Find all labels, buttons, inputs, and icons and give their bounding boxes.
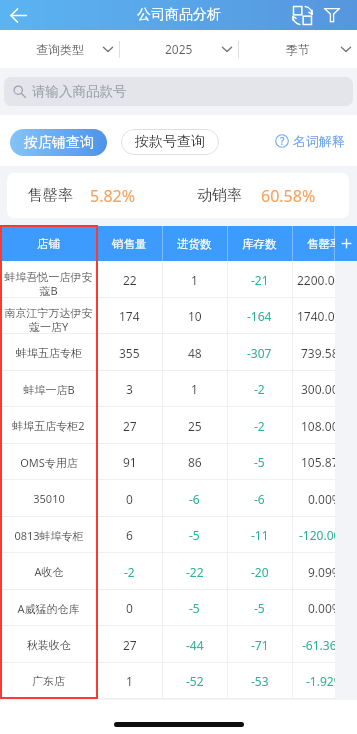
button[interactable]: 按款号查询 [121, 129, 219, 155]
staticText: 1 [191, 381, 198, 397]
staticText: 25 [188, 418, 202, 434]
button[interactable]: A威猛的仓库 [0, 590, 357, 626]
staticText: -5 [254, 600, 265, 616]
staticText: 86 [188, 454, 202, 470]
button[interactable]: 35010 [0, 480, 357, 517]
staticText: 3 [126, 381, 133, 397]
staticText: 蚌埠吾悦一店伊安蔻B [1, 270, 96, 298]
button[interactable]: 库存数 [227, 226, 292, 261]
staticText: OMS专用店 [20, 455, 78, 470]
staticText: 0 [126, 600, 133, 616]
staticText: -2 [124, 564, 135, 580]
button[interactable]: 进货数 [162, 226, 227, 261]
button[interactable]: 销售量 [97, 226, 162, 261]
staticText: -5 [254, 454, 265, 470]
staticText: 9.09% [308, 564, 342, 580]
staticText: 进货数 [177, 237, 212, 251]
staticText: 48 [188, 345, 202, 361]
staticText: 季节 [286, 42, 310, 57]
button[interactable]: A收仓 [0, 553, 357, 590]
button[interactable]: 蚌埠一店B [0, 371, 357, 407]
staticText: 请输入商品款号 [32, 83, 127, 100]
staticText: 蚌埠五店专柜 [16, 346, 82, 360]
staticText: 秋装收仓 [27, 638, 71, 652]
button[interactable]: ? [275, 133, 345, 149]
staticText: 5.82% [90, 185, 136, 207]
button[interactable]: 秋装收仓 [0, 626, 357, 663]
button[interactable]: OMS专用店 [0, 444, 357, 480]
button[interactable]: 蚌埠五店专柜 [0, 334, 357, 371]
staticText: 1740.00% [297, 308, 352, 324]
button[interactable]: 南京江宁万达伊安蔻一店Y [0, 298, 357, 334]
button[interactable]: 按店铺查询 [10, 129, 107, 156]
staticText: -61.36% [302, 637, 347, 653]
button[interactable]: 查询类型 [0, 30, 119, 68]
staticText: -1.92% [306, 673, 344, 689]
staticText: 售罄率 [307, 237, 342, 251]
staticText: 0813蚌埠专柜 [14, 528, 84, 543]
staticText: 公司商品分析 [137, 6, 221, 24]
staticText: 名词解释 [293, 133, 345, 149]
staticText: -71 [251, 637, 269, 653]
staticText: 店铺 [37, 237, 60, 251]
staticText: -120.00% [299, 527, 351, 543]
staticText: -2 [254, 418, 265, 434]
staticText: -2 [254, 381, 265, 397]
staticText: 0.00% [308, 491, 342, 507]
button[interactable]: 请输入商品款号 [4, 77, 353, 106]
staticText: 739.58% [301, 345, 349, 361]
button[interactable]: Back [0, 0, 36, 30]
staticText: 300.00% [301, 381, 349, 397]
button[interactable]: Add column [335, 226, 357, 261]
staticText: A威猛的仓库 [17, 601, 80, 616]
button[interactable]: 店铺 [0, 226, 97, 261]
staticText: ? [280, 134, 285, 148]
button[interactable]: 2025 [120, 30, 238, 68]
staticText: -5 [189, 600, 200, 616]
button[interactable]: 售罄率 [292, 226, 357, 261]
staticText: A收仓 [34, 564, 64, 579]
staticText: 蚌埠一店B [23, 382, 75, 397]
staticText: -164 [247, 308, 272, 324]
button[interactable]: 季节 [239, 30, 357, 68]
staticText: 0.00% [308, 600, 342, 616]
staticText: 27 [123, 637, 137, 653]
staticText: 6 [126, 527, 133, 543]
staticText: 1 [126, 673, 133, 689]
staticText: 355 [119, 345, 140, 361]
staticText: 22 [123, 272, 137, 288]
staticText: -53 [251, 673, 269, 689]
staticText: 10 [188, 308, 202, 324]
staticText: -21 [251, 272, 269, 288]
staticText: 91 [123, 454, 137, 470]
staticText: -20 [251, 564, 269, 580]
button[interactable]: Compare [286, 0, 318, 30]
staticText: 蚌埠五店专柜2 [12, 418, 85, 433]
staticText: 2200.00% [297, 272, 352, 288]
button[interactable]: 蚌埠吾悦一店伊安蔻B [0, 261, 357, 298]
staticText: 0 [126, 491, 133, 507]
staticText: 35010 [33, 491, 65, 506]
staticText: -52 [186, 673, 204, 689]
staticText: -6 [254, 491, 265, 507]
button[interactable]: 0813蚌埠专柜 [0, 517, 357, 553]
staticText: 174 [119, 308, 140, 324]
staticText: 查询类型 [36, 42, 84, 57]
button[interactable]: 蚌埠五店专柜2 [0, 407, 357, 444]
staticText: 库存数 [242, 237, 277, 251]
staticText: 广东店 [32, 674, 65, 688]
button[interactable]: Filter [318, 0, 346, 30]
staticText: -44 [186, 637, 204, 653]
staticText: -6 [189, 491, 200, 507]
staticText: 售罄率 [28, 186, 73, 205]
staticText: 按店铺查询 [24, 134, 94, 152]
button[interactable]: 广东店 [0, 663, 357, 699]
staticText: 按款号查询 [135, 133, 205, 151]
staticText: 动销率 [197, 186, 242, 205]
staticText: 销售量 [112, 237, 147, 251]
staticText: -11 [251, 527, 269, 543]
staticText: -22 [186, 564, 204, 580]
staticText: -307 [247, 345, 272, 361]
staticText: 2025 [165, 41, 193, 57]
staticText: -5 [189, 527, 200, 543]
